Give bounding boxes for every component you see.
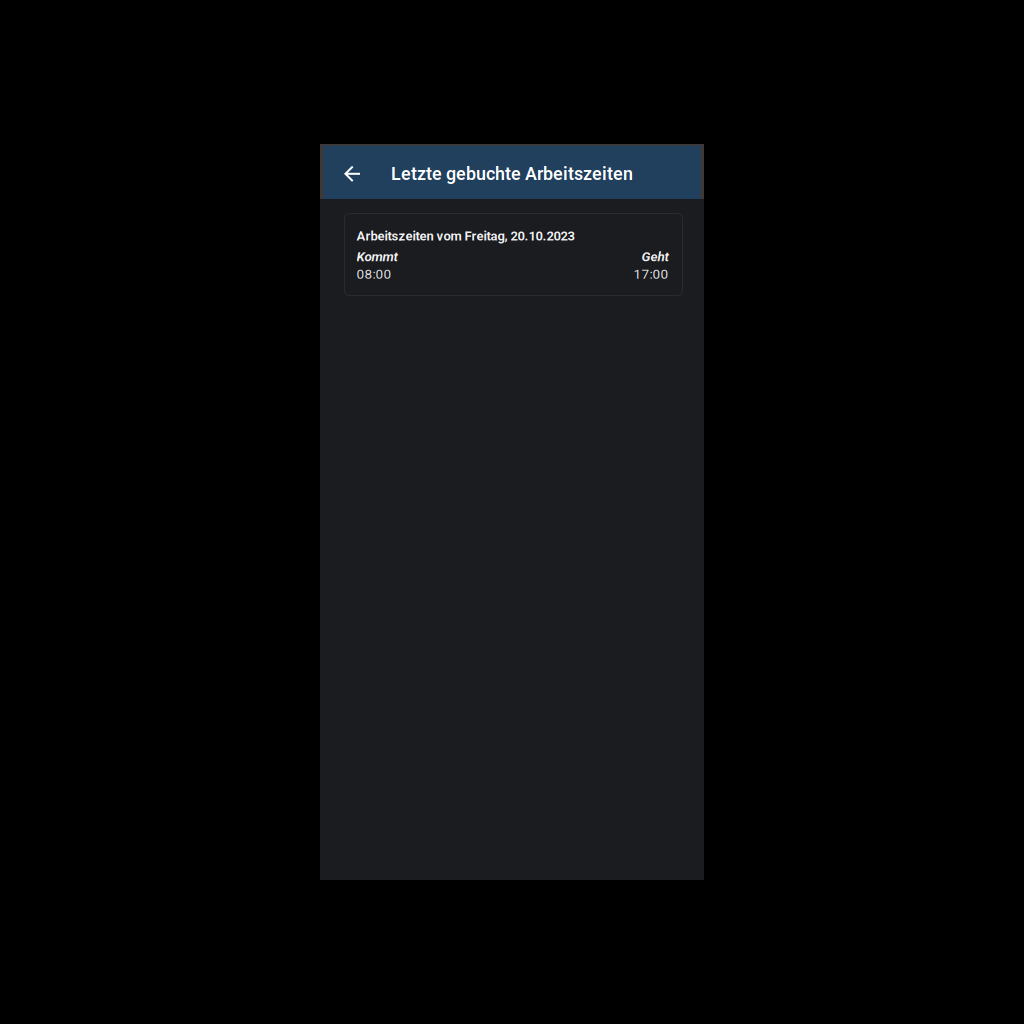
- staticText: 08:00: [356, 266, 391, 282]
- button[interactable]: Zurück: [324, 146, 372, 199]
- staticText: Letzte gebuchte Arbeitszeiten: [391, 163, 633, 184]
- staticText: Geht: [641, 249, 668, 265]
- staticText: Kommt: [356, 249, 397, 265]
- staticText: 17:00: [633, 266, 668, 282]
- staticText: Arbeitszeiten vom Freitag, 20.10.2023: [356, 228, 574, 244]
